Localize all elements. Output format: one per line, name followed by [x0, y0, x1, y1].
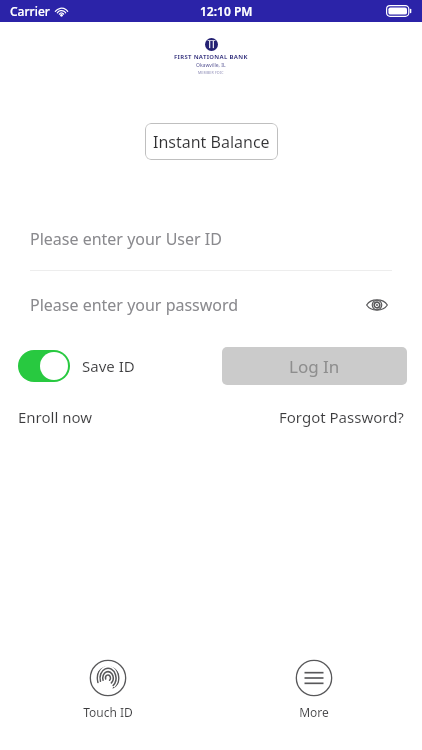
button[interactable]: Log In: [222, 347, 407, 385]
staticText: Enroll now: [18, 407, 93, 427]
staticText: Touch ID: [83, 704, 133, 720]
button[interactable]: Touch ID: [68, 657, 148, 722]
staticText: Forgot Password?: [279, 407, 404, 427]
button[interactable]: More: [274, 657, 354, 722]
button[interactable]: Save ID toggle: [18, 350, 135, 382]
staticText: Okawville, IL: [196, 62, 226, 69]
button[interactable]: Instant Balance: [145, 123, 278, 160]
staticText: MEMBER FDIC: [198, 70, 224, 75]
button[interactable]: Enroll now: [18, 407, 93, 427]
button[interactable]: Forgot Password?: [279, 407, 404, 427]
staticText: Please enter your password: [30, 294, 239, 316]
button[interactable]: Please enter your User ID: [30, 224, 392, 271]
staticText: 12:10 PM: [200, 3, 253, 19]
staticText: More: [299, 704, 329, 720]
staticText: Log In: [289, 355, 340, 378]
button[interactable]: Please enter your password: [30, 289, 392, 321]
button[interactable]: Save ID toggle: [18, 350, 70, 382]
staticText: Instant Balance: [153, 131, 270, 153]
staticText: Carrier: [10, 3, 50, 19]
staticText: Save ID: [82, 356, 135, 376]
staticText: FIRST NATIONAL BANK: [174, 53, 248, 61]
staticText: Please enter your User ID: [30, 228, 222, 250]
button[interactable]: Show password: [362, 290, 392, 320]
